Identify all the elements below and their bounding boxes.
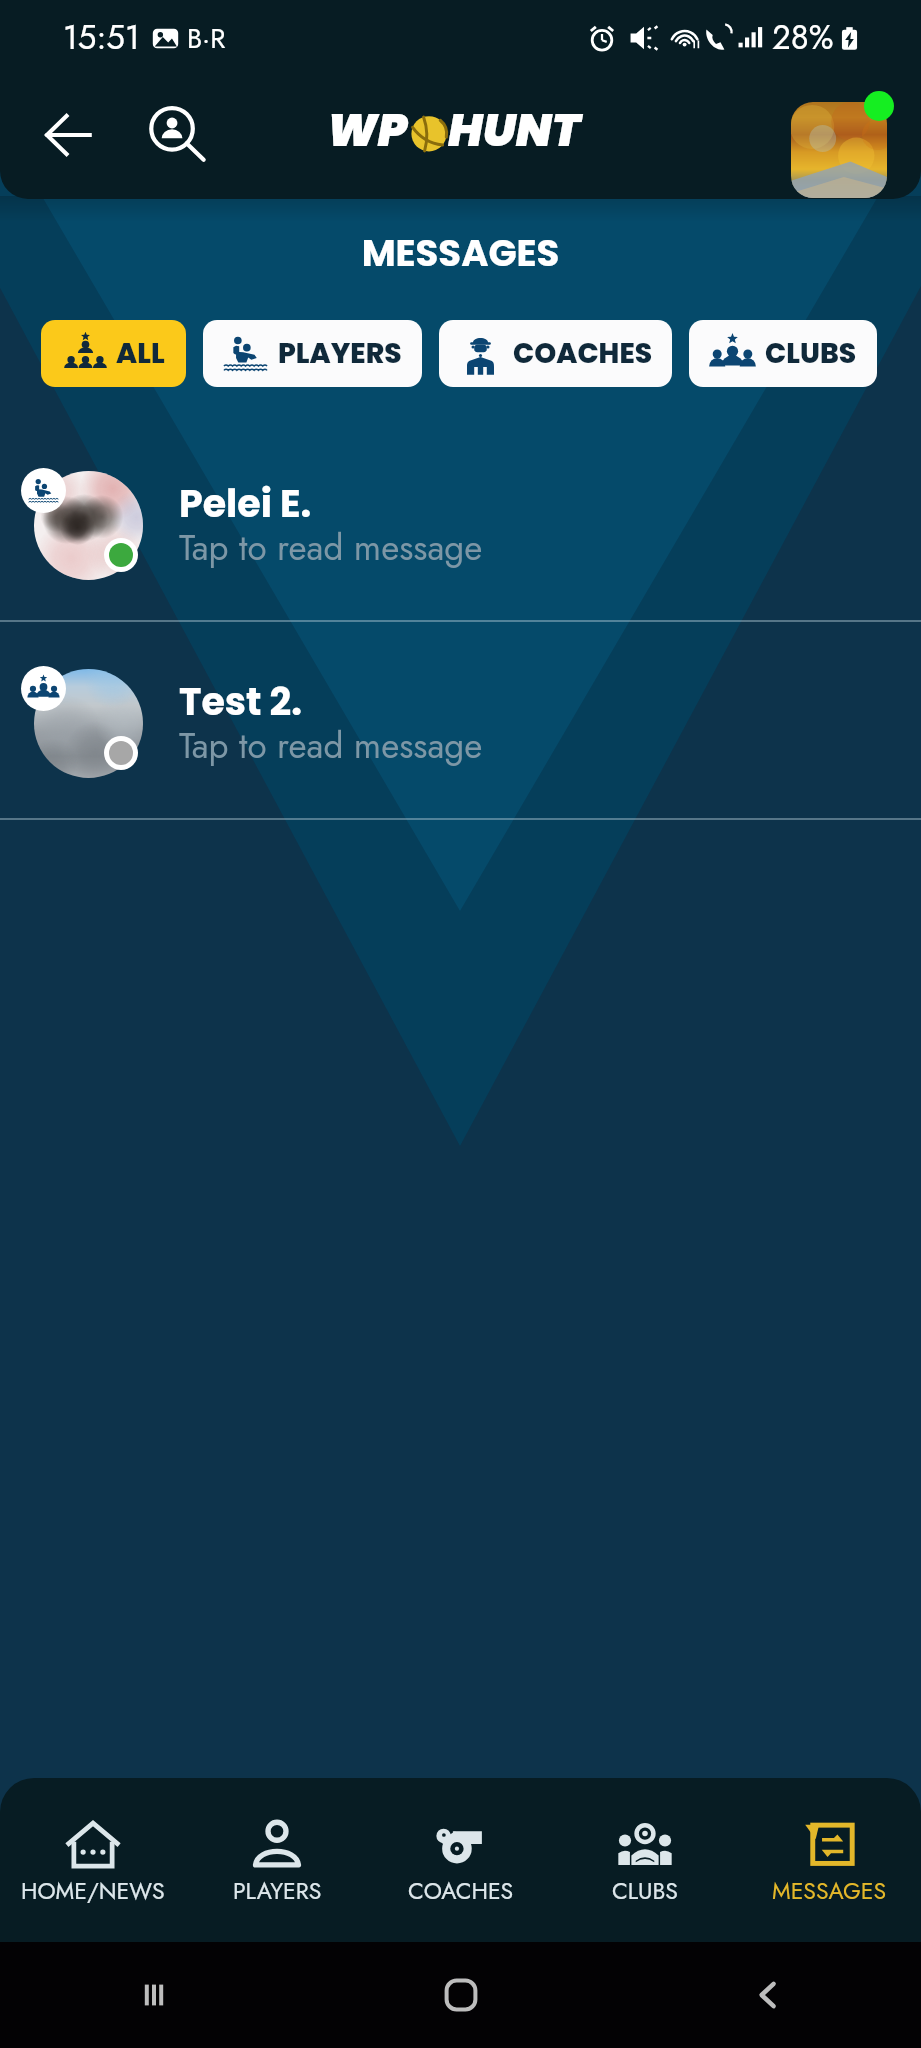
- button[interactable]: Back: [39, 102, 105, 168]
- staticText: MESSAGES: [772, 1874, 887, 1907]
- staticText: COACHES: [513, 334, 653, 373]
- button[interactable]: COACHES: [369, 1778, 553, 1942]
- staticText: Test 2.: [179, 675, 302, 728]
- staticText: ALL: [116, 334, 165, 373]
- staticText: Tap to read message: [179, 523, 483, 574]
- button[interactable]: Profile: [791, 102, 887, 198]
- staticText: 28%: [772, 14, 834, 62]
- staticText: CLUBS: [612, 1874, 678, 1907]
- button[interactable]: Test 2.: [0, 622, 921, 818]
- staticText: PLAYERS: [233, 1874, 322, 1907]
- staticText: B·R: [187, 19, 226, 58]
- other: Home: [441, 1975, 481, 2015]
- button[interactable]: Pelei E.: [0, 424, 921, 620]
- button[interactable]: PLAYERS: [185, 1778, 369, 1942]
- staticText: CLUBS: [765, 334, 857, 373]
- button[interactable]: HOME/NEWS: [0, 1778, 185, 1942]
- staticText: Pelei E.: [179, 477, 312, 530]
- button[interactable]: MESSAGES: [737, 1778, 921, 1942]
- staticText: HUNT: [448, 98, 580, 162]
- staticText: PLAYERS: [278, 334, 402, 373]
- button[interactable]: PLAYERS: [203, 320, 422, 387]
- staticText: HOME/NEWS: [21, 1874, 165, 1907]
- other: Recent apps: [134, 1975, 174, 2015]
- button[interactable]: CLUBS: [553, 1778, 737, 1942]
- button[interactable]: CLUBS: [689, 320, 877, 387]
- button[interactable]: ALL: [41, 320, 186, 387]
- other: Back: [748, 1975, 788, 2015]
- button[interactable]: Search people: [146, 104, 208, 166]
- staticText: WP: [327, 98, 408, 162]
- staticText: MESSAGES: [0, 227, 921, 279]
- button[interactable]: COACHES: [439, 320, 672, 387]
- staticText: 15:51: [63, 14, 140, 62]
- staticText: Tap to read message: [179, 721, 483, 772]
- staticText: COACHES: [408, 1874, 514, 1907]
